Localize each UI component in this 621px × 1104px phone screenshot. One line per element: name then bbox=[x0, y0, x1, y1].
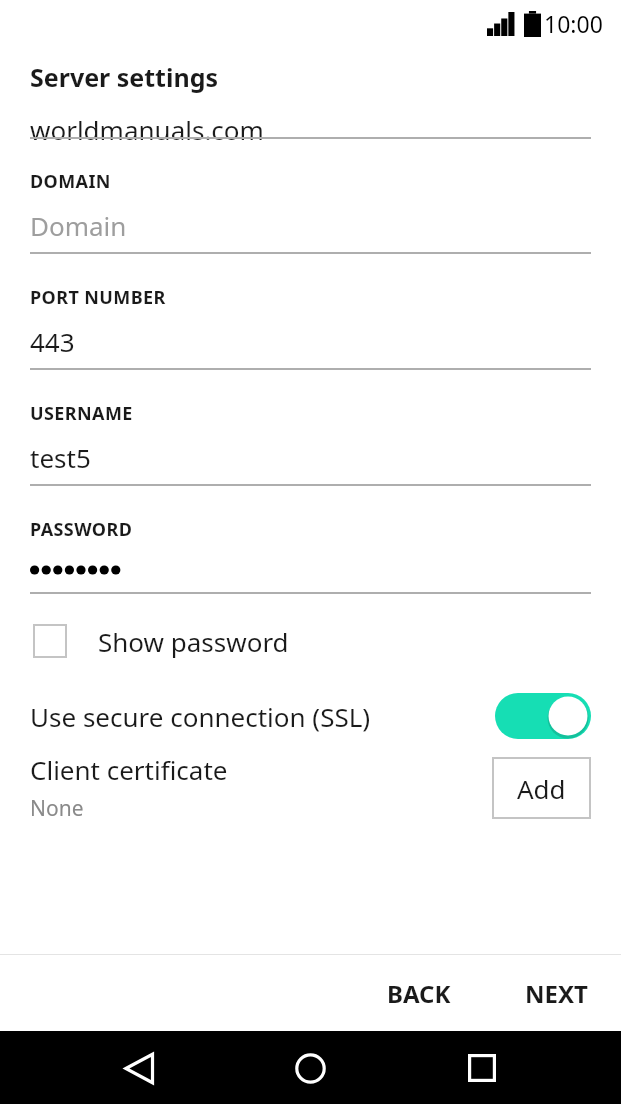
staticText: Add bbox=[517, 771, 566, 806]
button[interactable]: Home bbox=[279, 1037, 341, 1099]
button[interactable]: Recent apps bbox=[451, 1037, 513, 1099]
button[interactable]: NEXT bbox=[511, 965, 602, 1022]
button[interactable]: BACK bbox=[373, 965, 465, 1022]
staticText: Domain bbox=[30, 208, 127, 243]
staticText: Use secure connection (SSL) bbox=[30, 699, 495, 734]
staticText: worldmanuals.com bbox=[30, 112, 264, 142]
staticText: Client certificate bbox=[30, 752, 228, 787]
staticText: PASSWORD bbox=[30, 517, 133, 542]
staticText: BACK bbox=[387, 977, 451, 1010]
staticText: USERNAME bbox=[30, 401, 133, 426]
button[interactable]: Add bbox=[492, 757, 591, 819]
staticText: 443 bbox=[30, 324, 75, 359]
button[interactable]: Show password bbox=[0, 618, 621, 664]
staticText: test5 bbox=[30, 440, 91, 475]
staticText: DOMAIN bbox=[30, 169, 111, 194]
staticText: None bbox=[30, 794, 84, 823]
staticText: Server settings bbox=[30, 60, 219, 94]
button[interactable]: Back bbox=[108, 1037, 170, 1099]
staticText: NEXT bbox=[525, 977, 588, 1010]
button[interactable]: Use secure connection (SSL) bbox=[0, 690, 621, 742]
staticText: 10:00 bbox=[544, 8, 603, 39]
button[interactable]: Use secure connection (SSL) bbox=[495, 693, 591, 739]
staticText: Show password bbox=[98, 624, 289, 659]
staticText: PORT NUMBER bbox=[30, 285, 166, 310]
